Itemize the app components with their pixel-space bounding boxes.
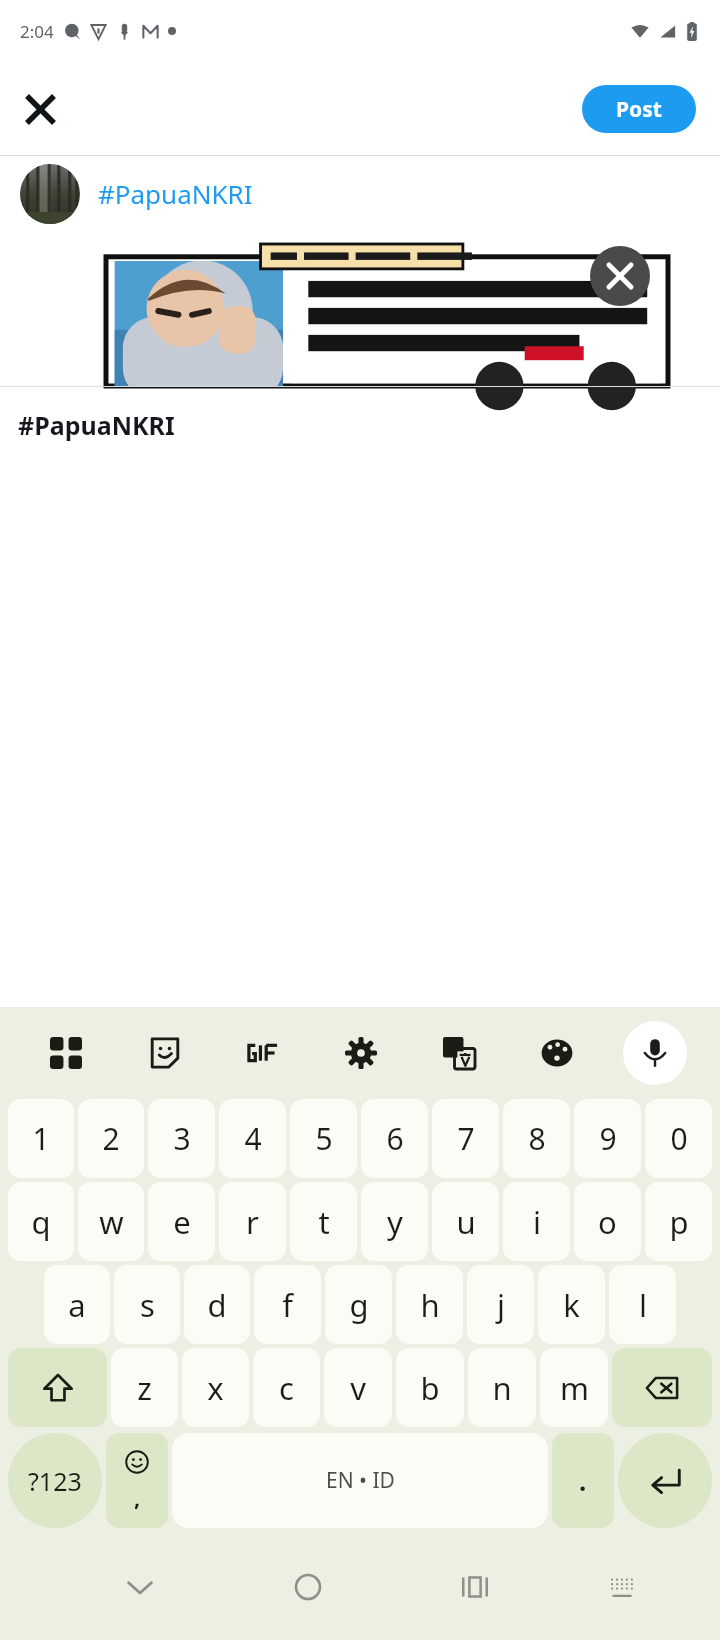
button[interactable]: 0 bbox=[645, 1099, 712, 1178]
staticText: x bbox=[207, 1367, 224, 1409]
button[interactable]: z bbox=[111, 1348, 178, 1427]
staticText: y bbox=[387, 1201, 403, 1243]
staticText: ?123 bbox=[28, 1464, 82, 1498]
button[interactable]: 6 bbox=[361, 1099, 428, 1178]
staticText: b bbox=[420, 1367, 440, 1409]
staticText: , bbox=[134, 1482, 141, 1512]
staticText: p bbox=[669, 1201, 689, 1243]
button[interactable]: n bbox=[468, 1348, 536, 1427]
button[interactable]: k bbox=[538, 1265, 605, 1344]
button[interactable]: d bbox=[184, 1265, 250, 1344]
button[interactable]: Home bbox=[220, 1533, 395, 1640]
button[interactable]: Emoji bbox=[106, 1433, 168, 1528]
button[interactable]: Switch keyboard bbox=[554, 1533, 690, 1640]
button[interactable]: Voice input bbox=[623, 1021, 687, 1085]
staticText: d bbox=[207, 1284, 227, 1326]
button[interactable]: x bbox=[182, 1348, 249, 1427]
staticText: 4 bbox=[244, 1118, 262, 1159]
staticText: u bbox=[456, 1201, 476, 1243]
button[interactable]: ?123 bbox=[8, 1433, 102, 1528]
button[interactable]: l bbox=[609, 1265, 676, 1344]
button[interactable]: h bbox=[396, 1265, 463, 1344]
button[interactable]: . bbox=[552, 1433, 614, 1528]
button[interactable]: y bbox=[361, 1182, 428, 1261]
button[interactable]: Back bbox=[60, 1533, 220, 1640]
button[interactable]: g bbox=[325, 1265, 392, 1344]
button[interactable]: Backspace bbox=[612, 1348, 712, 1427]
staticText: k bbox=[563, 1284, 580, 1326]
button[interactable]: 3 bbox=[148, 1099, 215, 1178]
button[interactable]: r bbox=[219, 1182, 286, 1261]
staticText: i bbox=[533, 1201, 541, 1243]
button[interactable]: Post bbox=[582, 85, 696, 133]
staticText: o bbox=[598, 1201, 617, 1243]
staticText: z bbox=[137, 1367, 152, 1409]
button[interactable]: Stickers bbox=[115, 1021, 214, 1085]
button[interactable]: t bbox=[290, 1182, 357, 1261]
button[interactable]: Themes bbox=[508, 1021, 606, 1085]
button[interactable]: 8 bbox=[503, 1099, 570, 1178]
staticText: l bbox=[639, 1284, 647, 1326]
button[interactable]: o bbox=[574, 1182, 641, 1261]
staticText: EN • ID bbox=[326, 1466, 395, 1495]
button[interactable]: p bbox=[645, 1182, 712, 1261]
button[interactable]: f bbox=[254, 1265, 321, 1344]
button[interactable]: Translate bbox=[410, 1021, 508, 1085]
button[interactable]: a bbox=[44, 1265, 110, 1344]
staticText: h bbox=[420, 1284, 440, 1326]
staticText: #PapuaNKRI bbox=[18, 408, 175, 442]
staticText: 6 bbox=[386, 1118, 404, 1159]
staticText: 0 bbox=[670, 1118, 688, 1159]
button[interactable]: u bbox=[432, 1182, 499, 1261]
staticText: 5 bbox=[315, 1118, 333, 1159]
staticText: 2 bbox=[102, 1118, 120, 1159]
button[interactable]: q bbox=[8, 1182, 74, 1261]
staticText: s bbox=[140, 1284, 155, 1326]
button[interactable]: Enter bbox=[618, 1433, 712, 1528]
button[interactable]: e bbox=[148, 1182, 215, 1261]
button[interactable]: 9 bbox=[574, 1099, 641, 1178]
staticText: Post bbox=[616, 95, 662, 124]
staticText: f bbox=[282, 1284, 293, 1326]
staticText: #PapuaNKRI bbox=[98, 176, 253, 211]
button[interactable]: Close bbox=[12, 81, 68, 137]
staticText: q bbox=[31, 1201, 51, 1243]
staticText: 8 bbox=[528, 1118, 546, 1159]
staticText: . bbox=[579, 1463, 587, 1498]
button[interactable]: j bbox=[467, 1265, 534, 1344]
button[interactable]: s bbox=[114, 1265, 180, 1344]
button[interactable]: Recents bbox=[395, 1533, 554, 1640]
button[interactable]: v bbox=[324, 1348, 392, 1427]
button[interactable]: Space bbox=[172, 1433, 548, 1528]
button[interactable]: i bbox=[503, 1182, 570, 1261]
staticText: w bbox=[99, 1201, 124, 1243]
button[interactable]: Apps bbox=[16, 1021, 115, 1085]
staticText: t bbox=[318, 1201, 330, 1243]
staticText: r bbox=[246, 1201, 259, 1243]
staticText: 3 bbox=[173, 1118, 191, 1159]
button[interactable]: GIF bbox=[214, 1021, 312, 1085]
staticText: n bbox=[492, 1367, 512, 1409]
button[interactable]: Shift bbox=[8, 1348, 107, 1427]
button[interactable]: 4 bbox=[219, 1099, 286, 1178]
staticText: a bbox=[68, 1284, 86, 1326]
button[interactable]: Remove image bbox=[590, 246, 650, 306]
button[interactable]: Settings bbox=[312, 1021, 410, 1085]
button[interactable]: m bbox=[540, 1348, 608, 1427]
staticText: e bbox=[173, 1201, 191, 1243]
staticText: c bbox=[279, 1367, 294, 1409]
button[interactable]: b bbox=[396, 1348, 464, 1427]
button[interactable]: 1 bbox=[8, 1099, 74, 1178]
button[interactable]: 5 bbox=[290, 1099, 357, 1178]
staticText: g bbox=[349, 1284, 369, 1326]
button[interactable]: c bbox=[253, 1348, 320, 1427]
button[interactable]: w bbox=[78, 1182, 144, 1261]
staticText: 9 bbox=[599, 1118, 617, 1159]
button[interactable]: 7 bbox=[432, 1099, 499, 1178]
staticText: 1 bbox=[32, 1118, 50, 1159]
staticText: 7 bbox=[457, 1118, 475, 1159]
staticText: v bbox=[350, 1367, 366, 1409]
staticText: 2:04 bbox=[20, 20, 54, 43]
staticText: j bbox=[497, 1284, 505, 1326]
button[interactable]: 2 bbox=[78, 1099, 144, 1178]
